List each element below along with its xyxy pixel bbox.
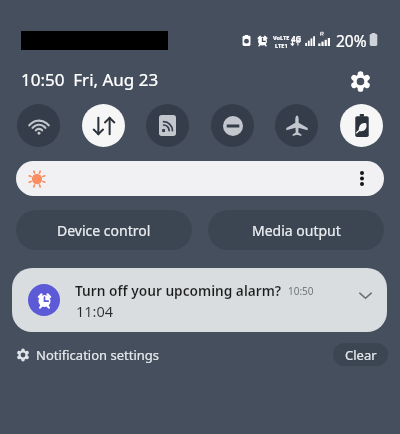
button[interactable]: Airplane mode (275, 104, 318, 147)
button[interactable]: Wi-Fi (17, 104, 60, 147)
staticText: 4G (291, 33, 302, 44)
button[interactable]: Media output (208, 210, 384, 250)
button[interactable]: Turn off your upcoming alarm? (12, 268, 387, 332)
staticText: 10:50 Fri, Aug 23 (21, 68, 159, 91)
button[interactable]: Device control (16, 210, 192, 250)
staticText: 20% (336, 30, 367, 51)
staticText: Notification settings (36, 346, 160, 364)
button[interactable]: Hotspot (146, 104, 189, 147)
button[interactable]: Mobile data (82, 104, 125, 147)
staticText: Clear (345, 346, 377, 364)
button[interactable]: Brightness (16, 161, 384, 196)
button[interactable]: Settings (348, 69, 372, 93)
button[interactable]: Battery saver (340, 104, 383, 147)
staticText: Media output (252, 221, 341, 240)
staticText: 10:50 (288, 284, 314, 298)
staticText: VoLTE (273, 34, 290, 42)
staticText: LTE1 (275, 42, 288, 50)
button[interactable]: Notification settings (17, 345, 160, 365)
staticText: Device control (57, 221, 151, 240)
staticText: Turn off your upcoming alarm? (75, 281, 282, 300)
other: Expand (359, 289, 372, 302)
staticText: 11:04 (76, 301, 114, 321)
button[interactable]: Clear (333, 343, 388, 366)
button[interactable]: Do not disturb (211, 104, 254, 147)
